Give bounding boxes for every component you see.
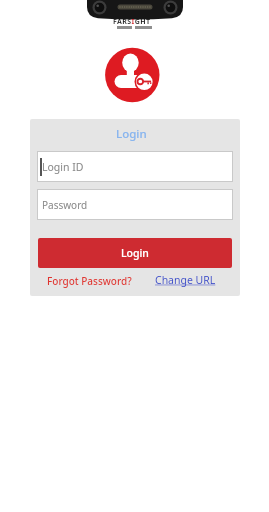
button[interactable]: Forgot Password? — [47, 274, 132, 288]
staticText: Forgot Password? — [47, 274, 132, 288]
button[interactable]: Login — [38, 238, 232, 268]
staticText: FARSIGHT — [113, 17, 151, 26]
button[interactable]: Login ID — [37, 151, 233, 182]
staticText: Change URL — [155, 273, 216, 287]
button[interactable]: Change URL — [155, 273, 216, 287]
button[interactable]: Password — [37, 189, 233, 220]
staticText: Login — [116, 126, 147, 142]
staticText: Login — [121, 246, 149, 260]
staticText: Login ID — [42, 160, 84, 174]
staticText: Password — [42, 198, 88, 212]
